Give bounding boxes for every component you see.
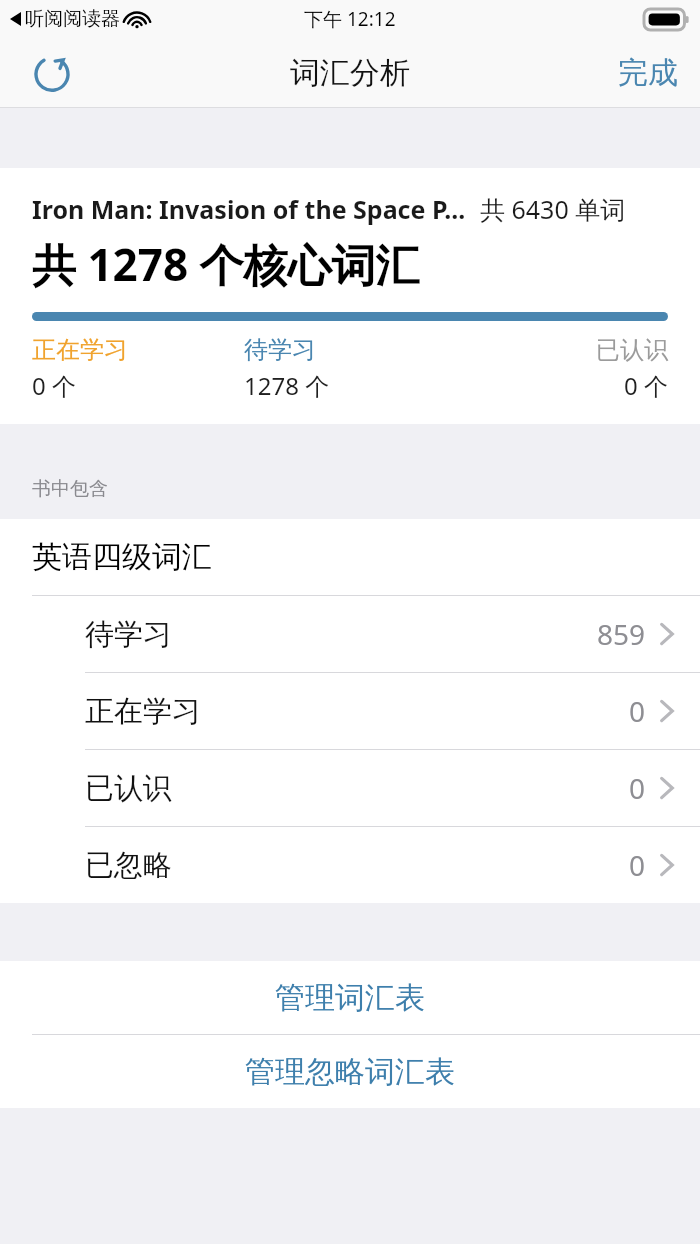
button[interactable]: 已忽略 — [0, 827, 700, 903]
staticText: 已认识 — [456, 335, 668, 365]
staticText: 正在学习 — [85, 693, 201, 730]
staticText: 词汇分析 — [290, 54, 410, 92]
button[interactable]: 刷新 — [20, 41, 84, 105]
staticText: 1278 个 — [244, 369, 456, 402]
button[interactable]: 已认识 — [0, 750, 700, 826]
staticText: 已忽略 — [85, 847, 172, 884]
staticText: 859 — [597, 615, 646, 653]
staticText: 0 — [629, 692, 646, 730]
staticText: 已认识 — [85, 770, 172, 807]
staticText: 正在学习 — [32, 335, 244, 365]
staticText: 0 — [629, 846, 646, 884]
staticText: 待学习 — [85, 616, 172, 653]
staticText: 待学习 — [244, 335, 456, 365]
staticText: 0 个 — [32, 369, 244, 402]
staticText: 管理词汇表 — [275, 979, 425, 1017]
staticText: 共 1278 个核心词汇 — [32, 234, 420, 294]
button[interactable]: 待学习 — [0, 596, 700, 672]
button[interactable]: 完成 — [596, 44, 700, 102]
staticText: 下午 12:12 — [304, 6, 396, 32]
button[interactable]: 正在学习 — [0, 673, 700, 749]
button[interactable]: 管理忽略词汇表 — [0, 1035, 700, 1108]
staticText: 0 — [629, 769, 646, 807]
staticText: 书中包含 — [32, 477, 108, 501]
staticText: 管理忽略词汇表 — [245, 1053, 455, 1091]
staticText: Iron Man: Invasion of the Space P... — [32, 192, 466, 226]
staticText: 英语四级词汇 — [32, 538, 212, 576]
staticText: 完成 — [618, 54, 678, 92]
staticText: 0 个 — [456, 369, 668, 402]
button[interactable]: 英语四级词汇 — [0, 519, 700, 595]
staticText: 共 6430 单词 — [480, 192, 626, 226]
staticText: 听阅阅读器 — [25, 7, 120, 31]
button[interactable]: 管理词汇表 — [0, 961, 700, 1034]
